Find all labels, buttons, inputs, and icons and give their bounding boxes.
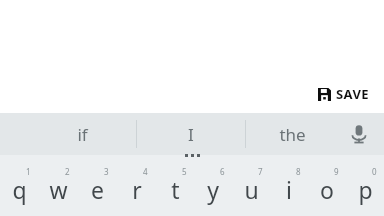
staticText: 7 bbox=[258, 166, 263, 177]
button[interactable]: 8 bbox=[270, 155, 308, 216]
staticText: 4 bbox=[143, 166, 148, 177]
staticText: I bbox=[188, 123, 194, 146]
staticText: u bbox=[244, 174, 259, 205]
staticText: 5 bbox=[182, 166, 187, 177]
button[interactable]: 1 bbox=[0, 155, 39, 216]
staticText: p bbox=[358, 174, 373, 205]
staticText: t bbox=[171, 174, 180, 205]
button[interactable]: I bbox=[137, 113, 245, 155]
staticText: r bbox=[132, 174, 142, 205]
staticText: 0 bbox=[372, 166, 377, 177]
button[interactable]: 0 bbox=[346, 155, 384, 216]
staticText: if bbox=[77, 123, 88, 146]
staticText: SAVE bbox=[336, 85, 369, 103]
button[interactable]: 2 bbox=[39, 155, 78, 216]
button[interactable]: 5 bbox=[156, 155, 194, 216]
staticText: 3 bbox=[104, 166, 109, 177]
button[interactable]: 3 bbox=[78, 155, 117, 216]
button[interactable]: More suggestions bbox=[177, 151, 208, 160]
staticText: o bbox=[320, 174, 334, 205]
button[interactable]: 7 bbox=[232, 155, 270, 216]
staticText: 2 bbox=[65, 166, 70, 177]
staticText: w bbox=[49, 174, 68, 205]
staticText: y bbox=[207, 174, 219, 205]
button[interactable]: 4 bbox=[117, 155, 156, 216]
button[interactable]: SAVE bbox=[314, 82, 373, 106]
button[interactable]: the bbox=[246, 113, 338, 155]
staticText: 8 bbox=[296, 166, 301, 177]
button[interactable]: Voice input bbox=[342, 117, 376, 151]
staticText: e bbox=[91, 174, 104, 205]
staticText: 6 bbox=[220, 166, 225, 177]
staticText: i bbox=[286, 174, 292, 205]
button[interactable]: 9 bbox=[308, 155, 346, 216]
staticText: 9 bbox=[334, 166, 339, 177]
button[interactable]: if bbox=[28, 113, 136, 155]
button[interactable]: 6 bbox=[194, 155, 232, 216]
staticText: the bbox=[279, 123, 306, 146]
staticText: q bbox=[12, 174, 27, 205]
staticText: 1 bbox=[26, 166, 31, 177]
